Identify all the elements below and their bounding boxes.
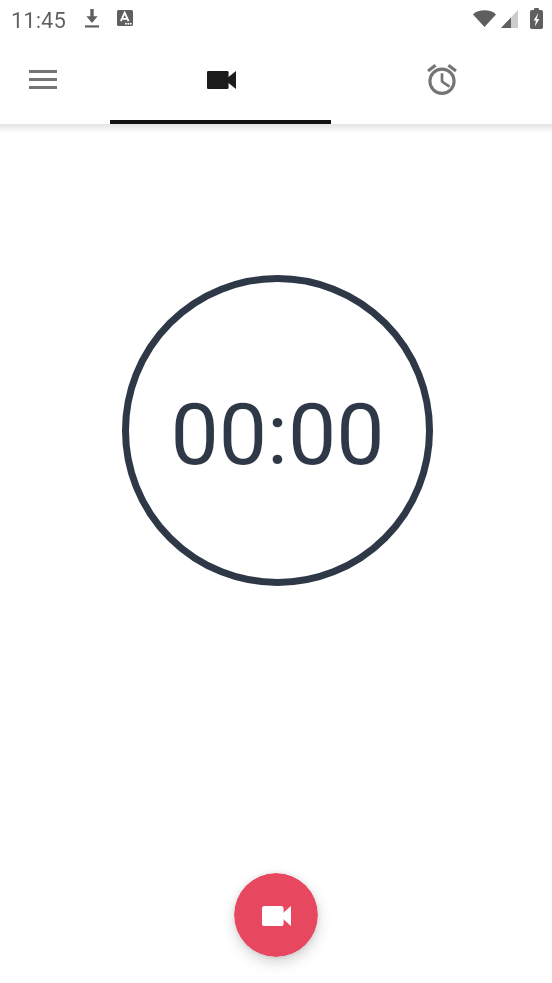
button[interactable]: Video — [110, 45, 331, 124]
button[interactable]: Alarm — [331, 45, 552, 124]
button[interactable]: Record video — [234, 873, 318, 957]
staticText: 00:00 — [170, 384, 385, 485]
staticText: 11:45 — [11, 8, 66, 34]
button[interactable]: Menu — [0, 45, 86, 124]
